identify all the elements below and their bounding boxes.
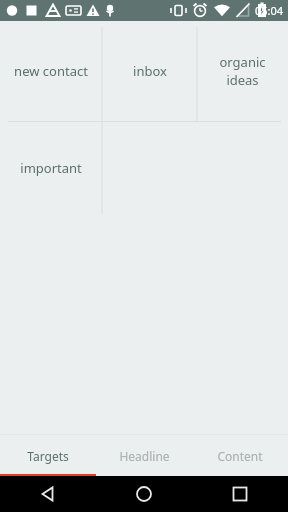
staticText: organic ideas	[205, 53, 280, 89]
staticText: new contact	[14, 62, 88, 80]
staticText: Targets	[27, 448, 69, 464]
button[interactable]: Content	[192, 435, 288, 476]
button[interactable]: Recent apps	[192, 476, 288, 512]
staticText: Headline	[119, 448, 170, 464]
button[interactable]: Back	[0, 476, 96, 512]
button[interactable]: new contact	[0, 21, 102, 121]
button[interactable]: Targets	[0, 435, 96, 476]
button[interactable]: Home	[96, 476, 192, 512]
staticText: Content	[217, 448, 263, 464]
button[interactable]: organic ideas	[197, 21, 288, 121]
staticText: 05:04	[255, 3, 284, 18]
staticText: important	[20, 159, 82, 177]
button[interactable]: inbox	[102, 21, 197, 121]
button[interactable]: important	[0, 121, 102, 214]
button[interactable]: Headline	[96, 435, 192, 476]
staticText: inbox	[133, 62, 167, 80]
